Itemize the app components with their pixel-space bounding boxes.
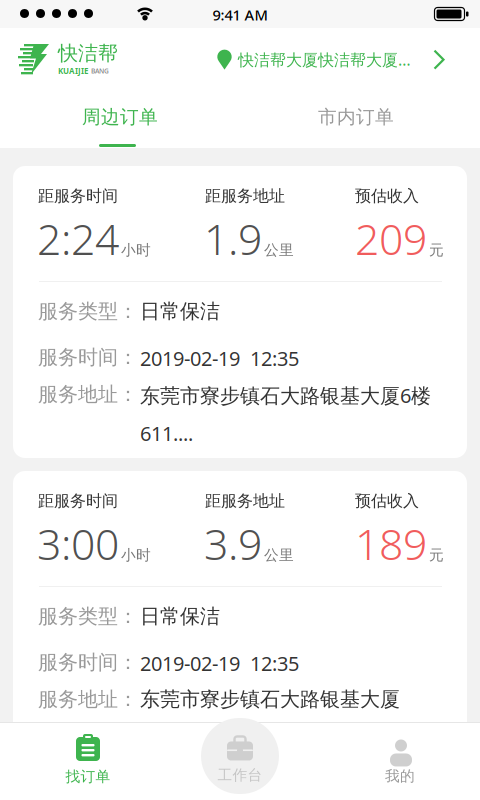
staticText: 快洁帮大厦快洁帮大厦… bbox=[238, 49, 411, 70]
staticText: 公里 bbox=[264, 241, 294, 259]
staticText: 2019-02-19 12:35 bbox=[140, 650, 299, 677]
button[interactable]: 找订单 bbox=[0, 722, 176, 796]
staticText: 服务地址： bbox=[38, 687, 138, 712]
staticText: 2019-02-19 12:35 bbox=[140, 345, 299, 372]
staticText: 服务类型： bbox=[38, 299, 138, 324]
staticText: BANG bbox=[91, 66, 109, 75]
button[interactable]: 工作台 bbox=[176, 722, 304, 796]
staticText: KUAIJIE bbox=[58, 66, 88, 76]
staticText: 611.... bbox=[140, 420, 193, 447]
staticText: 工作台 bbox=[217, 766, 262, 784]
button[interactable]: 距服务时间 bbox=[13, 471, 467, 763]
staticText: 209 bbox=[355, 210, 427, 267]
staticText: 东莞市寮步镇石大路银基大厦 bbox=[140, 687, 400, 712]
staticText: 距服务地址 bbox=[205, 491, 285, 511]
staticText: 1.9 bbox=[204, 210, 262, 267]
staticText: 找订单 bbox=[65, 767, 110, 785]
staticText: 距服务时间 bbox=[38, 491, 118, 511]
staticText: 服务时间： bbox=[38, 650, 138, 675]
staticText: 快洁帮 bbox=[58, 41, 118, 66]
staticText: 189 bbox=[355, 515, 427, 572]
staticText: 距服务地址 bbox=[205, 186, 285, 206]
staticText: 9:41 AM bbox=[212, 5, 267, 24]
staticText: 东莞市寮步镇石大路银基大厦6楼 bbox=[140, 382, 431, 409]
staticText: 预估收入 bbox=[355, 491, 419, 511]
staticText: 元 bbox=[429, 241, 444, 259]
button[interactable]: 距服务时间 bbox=[13, 166, 467, 458]
staticText: 2:24 bbox=[37, 210, 119, 267]
staticText: 距服务时间 bbox=[38, 186, 118, 206]
button[interactable]: 市内订单 bbox=[240, 95, 480, 139]
staticText: 小时 bbox=[121, 241, 151, 259]
staticText: 服务地址： bbox=[38, 382, 138, 407]
staticText: 服务类型： bbox=[38, 604, 138, 629]
button[interactable]: 我的 bbox=[304, 722, 480, 796]
staticText: 日常保洁 bbox=[140, 604, 220, 629]
staticText: 3:00 bbox=[37, 515, 119, 572]
staticText: 服务时间： bbox=[38, 345, 138, 370]
staticText: 小时 bbox=[121, 546, 151, 564]
staticText: 我的 bbox=[385, 767, 415, 785]
staticText: 3.9 bbox=[204, 515, 262, 572]
staticText: 预估收入 bbox=[355, 186, 419, 206]
staticText: 元 bbox=[429, 546, 444, 564]
staticText: 市内订单 bbox=[318, 105, 394, 128]
staticText: 日常保洁 bbox=[140, 299, 220, 324]
button[interactable]: 快洁帮大厦快洁帮大厦… bbox=[217, 49, 446, 70]
staticText: 公里 bbox=[264, 546, 294, 564]
button[interactable]: 周边订单 bbox=[0, 95, 240, 139]
staticText: 周边订单 bbox=[82, 105, 158, 128]
